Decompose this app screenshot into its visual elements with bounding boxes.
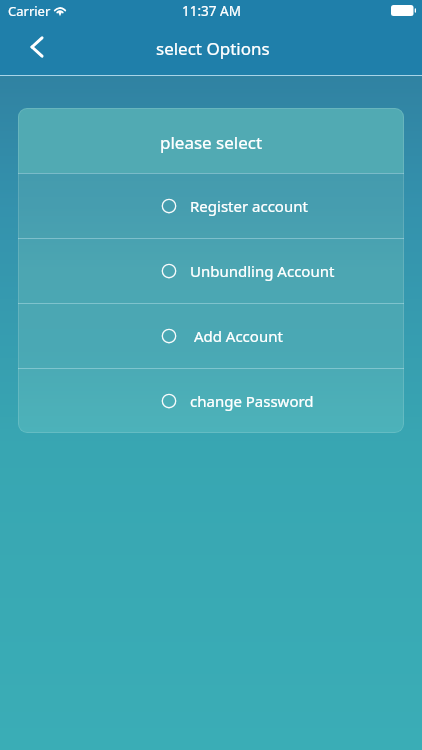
staticText: Register account [190, 196, 308, 216]
button[interactable]: Unbundling Account [18, 239, 404, 303]
button[interactable]: Add Account [18, 304, 404, 368]
staticText: please select [160, 131, 263, 154]
button[interactable]: change Password [18, 369, 404, 433]
staticText: Carrier [8, 2, 51, 20]
staticText: Unbundling Account [190, 261, 335, 281]
staticText: 11:37 AM [182, 2, 241, 20]
staticText: change Password [190, 391, 314, 411]
button[interactable]: Register account [18, 174, 404, 238]
staticText: select Options [156, 37, 270, 60]
button[interactable]: Back [0, 21, 56, 76]
staticText: Add Account [190, 326, 283, 346]
